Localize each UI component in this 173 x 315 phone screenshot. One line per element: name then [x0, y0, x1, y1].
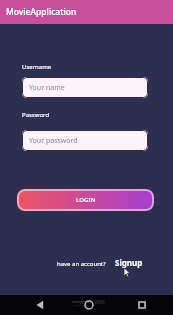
button[interactable]: Recents: [132, 295, 152, 315]
button[interactable]: Home: [79, 295, 99, 315]
button[interactable]: Signup: [115, 257, 143, 268]
button[interactable]: Your name: [22, 77, 148, 98]
staticText: Your password: [29, 136, 78, 146]
staticText: Username: [22, 63, 52, 71]
button[interactable]: LOGIN: [17, 189, 154, 211]
staticText: MovieApplication: [6, 6, 77, 18]
staticText: Signup: [115, 257, 143, 268]
staticText: LOGIN: [76, 196, 96, 204]
staticText: have an account?: [57, 260, 106, 268]
staticText: Your name: [29, 83, 65, 93]
staticText: Password: [22, 111, 50, 119]
button[interactable]: Your password: [22, 130, 148, 151]
button[interactable]: Back: [30, 295, 50, 315]
